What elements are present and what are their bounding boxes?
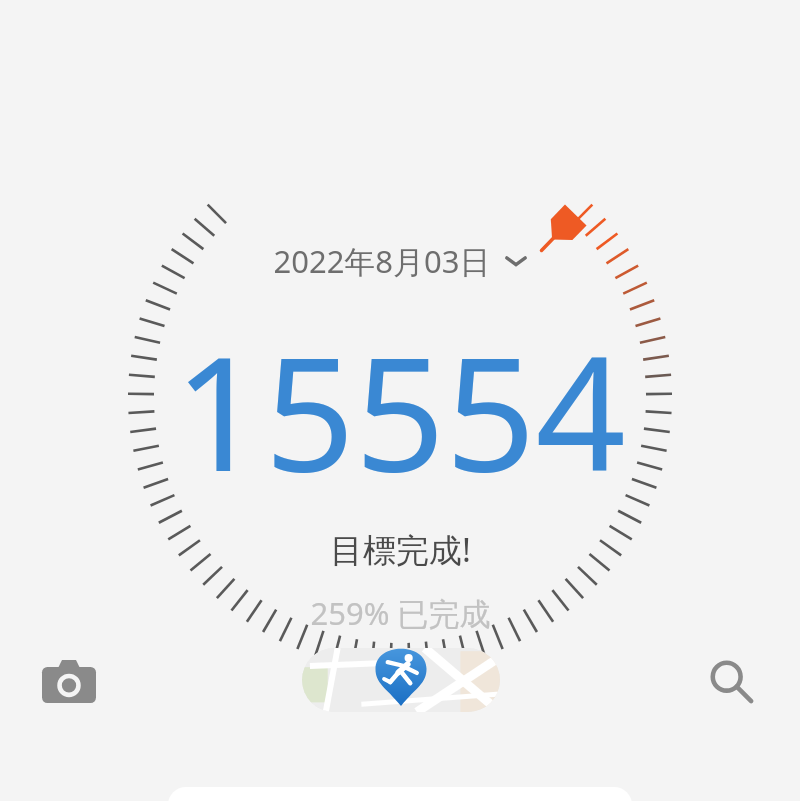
staticText: 目標完成! <box>330 527 471 572</box>
button[interactable]: Camera <box>34 648 104 714</box>
button[interactable]: Search <box>696 648 766 714</box>
staticText: 259% 已完成 <box>310 592 491 634</box>
staticText: 2022年8月03日 <box>273 240 491 282</box>
button[interactable]: 2022年8月03日 <box>265 236 535 286</box>
staticText: 15554 <box>174 302 626 517</box>
button[interactable]: Map route <box>302 648 500 712</box>
